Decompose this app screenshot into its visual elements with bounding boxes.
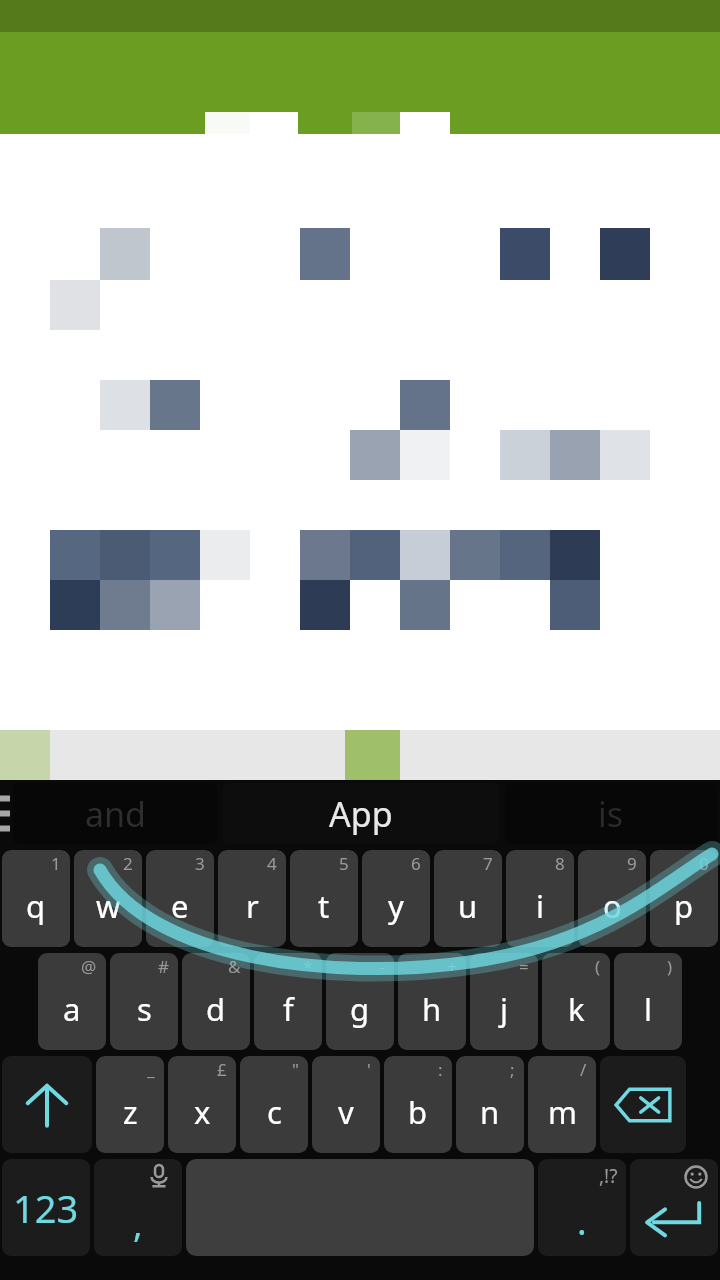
button[interactable]: +	[398, 953, 466, 1050]
button[interactable]: "	[240, 1056, 308, 1153]
button[interactable]: #	[110, 953, 178, 1050]
staticText: y	[388, 885, 404, 927]
staticText: #	[158, 955, 169, 978]
staticText: p	[674, 885, 694, 927]
button[interactable]: _	[96, 1056, 164, 1153]
staticText: 6	[411, 852, 421, 875]
staticText: 7	[483, 852, 493, 875]
staticText: £	[217, 1058, 227, 1081]
button[interactable]: ;	[456, 1056, 524, 1153]
staticText: =	[519, 955, 529, 978]
staticText: j	[500, 988, 508, 1030]
button[interactable]: App	[223, 783, 499, 844]
staticText: 5	[339, 852, 349, 875]
staticText: ,	[133, 1199, 143, 1248]
staticText: o	[603, 885, 622, 927]
staticText: :	[438, 1058, 443, 1081]
staticText: d	[206, 988, 226, 1030]
button[interactable]: @	[38, 953, 106, 1050]
button[interactable]: 2	[74, 850, 142, 947]
staticText: e	[171, 885, 189, 927]
button[interactable]: Shift	[2, 1056, 92, 1153]
staticText: s	[137, 988, 152, 1030]
staticText: w	[96, 885, 121, 927]
staticText: b	[408, 1091, 428, 1133]
staticText: n	[480, 1091, 500, 1133]
button[interactable]: -	[326, 953, 394, 1050]
staticText: +	[447, 955, 457, 978]
button[interactable]: )	[614, 953, 682, 1050]
staticText: .	[577, 1197, 587, 1246]
staticText: )	[667, 955, 673, 978]
button[interactable]: /	[528, 1056, 596, 1153]
button[interactable]: &	[182, 953, 250, 1050]
button[interactable]: 3	[146, 850, 214, 947]
staticText: m	[548, 1091, 577, 1133]
button[interactable]: Period	[538, 1159, 626, 1256]
staticText: 4	[267, 852, 277, 875]
staticText: t	[318, 885, 330, 927]
staticText: 8	[555, 852, 565, 875]
staticText: c	[267, 1091, 282, 1133]
staticText: &	[228, 955, 241, 978]
button[interactable]: £	[168, 1056, 236, 1153]
button[interactable]: *	[254, 953, 322, 1050]
staticText: q	[26, 885, 46, 927]
staticText: r	[246, 885, 259, 927]
staticText: z	[123, 1091, 138, 1133]
button[interactable]: :	[384, 1056, 452, 1153]
button[interactable]: is	[505, 783, 717, 844]
staticText: ;	[510, 1058, 515, 1081]
staticText: h	[422, 988, 442, 1030]
staticText: and	[85, 791, 146, 837]
staticText: g	[350, 988, 370, 1030]
staticText: a	[63, 988, 81, 1030]
button[interactable]: 0	[650, 850, 718, 947]
staticText: /	[580, 1058, 587, 1081]
staticText: i	[536, 885, 544, 927]
button[interactable]: Backspace	[600, 1056, 686, 1153]
button[interactable]: Numbers	[2, 1159, 90, 1256]
staticText: u	[458, 885, 478, 927]
staticText: 9	[627, 852, 637, 875]
staticText: 2	[123, 852, 133, 875]
button[interactable]: 4	[218, 850, 286, 947]
button[interactable]: (	[542, 953, 610, 1050]
button[interactable]: Menu	[0, 780, 10, 847]
button[interactable]: 1	[2, 850, 70, 947]
button[interactable]: Comma and voice input	[94, 1159, 182, 1256]
button[interactable]: 5	[290, 850, 358, 947]
button[interactable]: 7	[434, 850, 502, 947]
button[interactable]: 8	[506, 850, 574, 947]
button[interactable]: 9	[578, 850, 646, 947]
staticText: "	[292, 1058, 299, 1081]
staticText: (	[595, 955, 601, 978]
staticText: f	[283, 988, 294, 1030]
staticText: _	[147, 1058, 155, 1081]
staticText: @	[81, 955, 97, 978]
staticText: -	[379, 955, 385, 978]
button[interactable]: 6	[362, 850, 430, 947]
staticText: 3	[195, 852, 205, 875]
button[interactable]: =	[470, 953, 538, 1050]
staticText: 123	[13, 1182, 79, 1234]
staticText: l	[644, 988, 652, 1030]
button[interactable]: '	[312, 1056, 380, 1153]
staticText: x	[194, 1091, 211, 1133]
staticText: v	[338, 1091, 354, 1133]
staticText: 1	[51, 852, 61, 875]
staticText: '	[367, 1058, 371, 1081]
staticText: App	[329, 791, 393, 837]
staticText: k	[568, 988, 585, 1030]
staticText: *	[303, 955, 313, 978]
staticText: ,!?	[599, 1163, 618, 1189]
staticText: is	[598, 791, 624, 837]
staticText: 0	[699, 852, 709, 875]
button[interactable]: Enter	[630, 1159, 718, 1256]
button[interactable]: and	[13, 783, 217, 844]
